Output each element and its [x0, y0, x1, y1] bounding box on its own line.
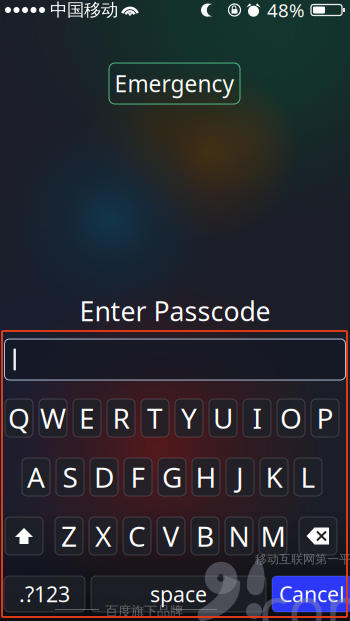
staticText: U: [213, 399, 233, 437]
staticText: R: [112, 399, 129, 437]
staticText: 百度旗下品牌: [105, 603, 183, 619]
staticText: X: [95, 517, 111, 555]
button[interactable]: P: [311, 399, 339, 437]
staticText: P: [316, 399, 333, 437]
staticText: D: [94, 458, 114, 496]
button[interactable]: X: [89, 517, 117, 555]
staticText: H: [195, 458, 216, 496]
staticText: Q: [8, 399, 30, 437]
button[interactable]: C: [123, 517, 151, 555]
staticText: T: [147, 399, 163, 437]
button[interactable]: R: [107, 399, 135, 437]
button[interactable]: D: [90, 458, 118, 496]
button[interactable]: .?123: [4, 576, 85, 612]
button[interactable]: J: [226, 458, 254, 496]
staticText: 移动互联网第一平台: [255, 552, 350, 567]
button[interactable]: G: [158, 458, 186, 496]
button[interactable]: Delete: [299, 517, 337, 555]
staticText: L: [300, 458, 315, 496]
button[interactable]: E: [73, 399, 101, 437]
button[interactable]: B: [191, 517, 219, 555]
button[interactable]: I: [243, 399, 271, 437]
button[interactable]: K: [260, 458, 288, 496]
button[interactable]: U: [209, 399, 237, 437]
staticText: O: [280, 399, 302, 437]
button[interactable]: F: [124, 458, 152, 496]
button[interactable]: S: [56, 458, 84, 496]
staticText: W: [40, 399, 66, 437]
staticText: .com: [243, 567, 350, 621]
staticText: Enter Passcode: [79, 293, 270, 329]
button[interactable]: O: [277, 399, 305, 437]
staticText: A: [27, 458, 45, 496]
staticText: C: [128, 517, 146, 555]
button[interactable]: Shift: [5, 517, 43, 555]
staticText: S: [62, 458, 77, 496]
button[interactable]: V: [157, 517, 185, 555]
button[interactable]: Emergency: [109, 63, 240, 104]
staticText: Cancel: [279, 580, 345, 608]
button[interactable]: A: [22, 458, 50, 496]
staticText: M: [260, 517, 285, 555]
staticText: .?123: [19, 580, 70, 608]
staticText: K: [265, 458, 282, 496]
button[interactable]: L: [294, 458, 322, 496]
staticText: 中国移动: [50, 0, 118, 21]
staticText: space: [150, 580, 207, 608]
button[interactable]: Y: [175, 399, 203, 437]
staticText: Z: [61, 517, 77, 555]
button[interactable]: H: [192, 458, 220, 496]
button[interactable]: T: [141, 399, 169, 437]
button[interactable]: N: [225, 517, 253, 555]
button[interactable]: Cancel: [272, 576, 350, 612]
staticText: E: [79, 399, 95, 437]
staticText: G: [162, 458, 182, 496]
staticText: N: [228, 517, 249, 555]
staticText: I: [252, 399, 261, 437]
button[interactable]: M: [259, 517, 287, 555]
staticText: B: [196, 517, 214, 555]
button[interactable]: space: [91, 576, 266, 612]
staticText: F: [130, 458, 145, 496]
staticText: Emergency: [114, 68, 234, 98]
button[interactable]: W: [39, 399, 67, 437]
button[interactable]: Q: [5, 399, 33, 437]
staticText: J: [236, 458, 244, 496]
staticText: Y: [181, 399, 197, 437]
staticText: V: [162, 517, 179, 555]
staticText: 48%: [267, 0, 305, 22]
button[interactable]: Z: [55, 517, 83, 555]
